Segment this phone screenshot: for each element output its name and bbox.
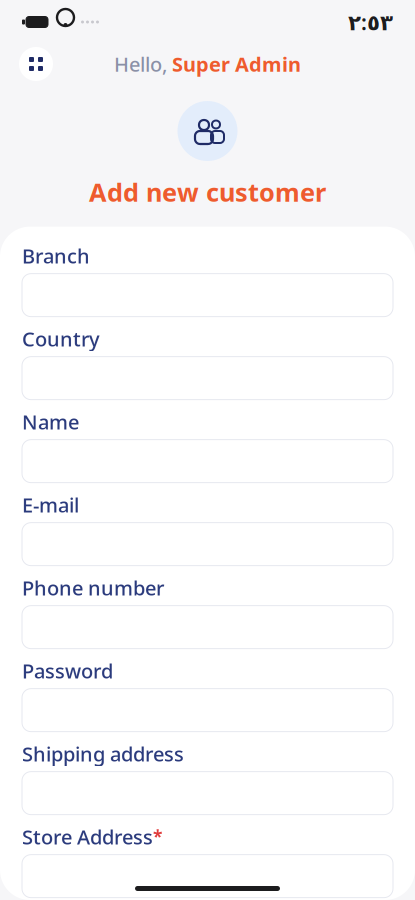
staticText: Super Admin <box>172 51 301 77</box>
button[interactable]: Store Address <box>22 855 393 898</box>
button[interactable]: Password <box>22 689 393 732</box>
button[interactable]: Name <box>22 440 393 483</box>
staticText: Shipping address <box>22 740 184 767</box>
button[interactable]: E-mail <box>22 523 393 566</box>
button[interactable]: Country <box>22 357 393 400</box>
button[interactable]: Shipping address <box>22 772 393 815</box>
button[interactable]: Menu <box>16 44 56 84</box>
staticText: Name <box>22 408 79 435</box>
button[interactable]: Phone number <box>22 606 393 649</box>
staticText: Country <box>22 325 100 352</box>
staticText: ٢:٥٣ <box>348 8 393 36</box>
staticText: Phone number <box>22 574 164 601</box>
staticText: Add new customer <box>89 175 326 209</box>
staticText: * <box>153 825 162 848</box>
staticText: Branch <box>22 242 90 269</box>
staticText: Hello, <box>114 51 167 77</box>
staticText: E-mail <box>22 491 79 518</box>
staticText: Store Address <box>22 823 153 850</box>
button[interactable]: Branch <box>22 274 393 317</box>
staticText: Password <box>22 657 113 684</box>
